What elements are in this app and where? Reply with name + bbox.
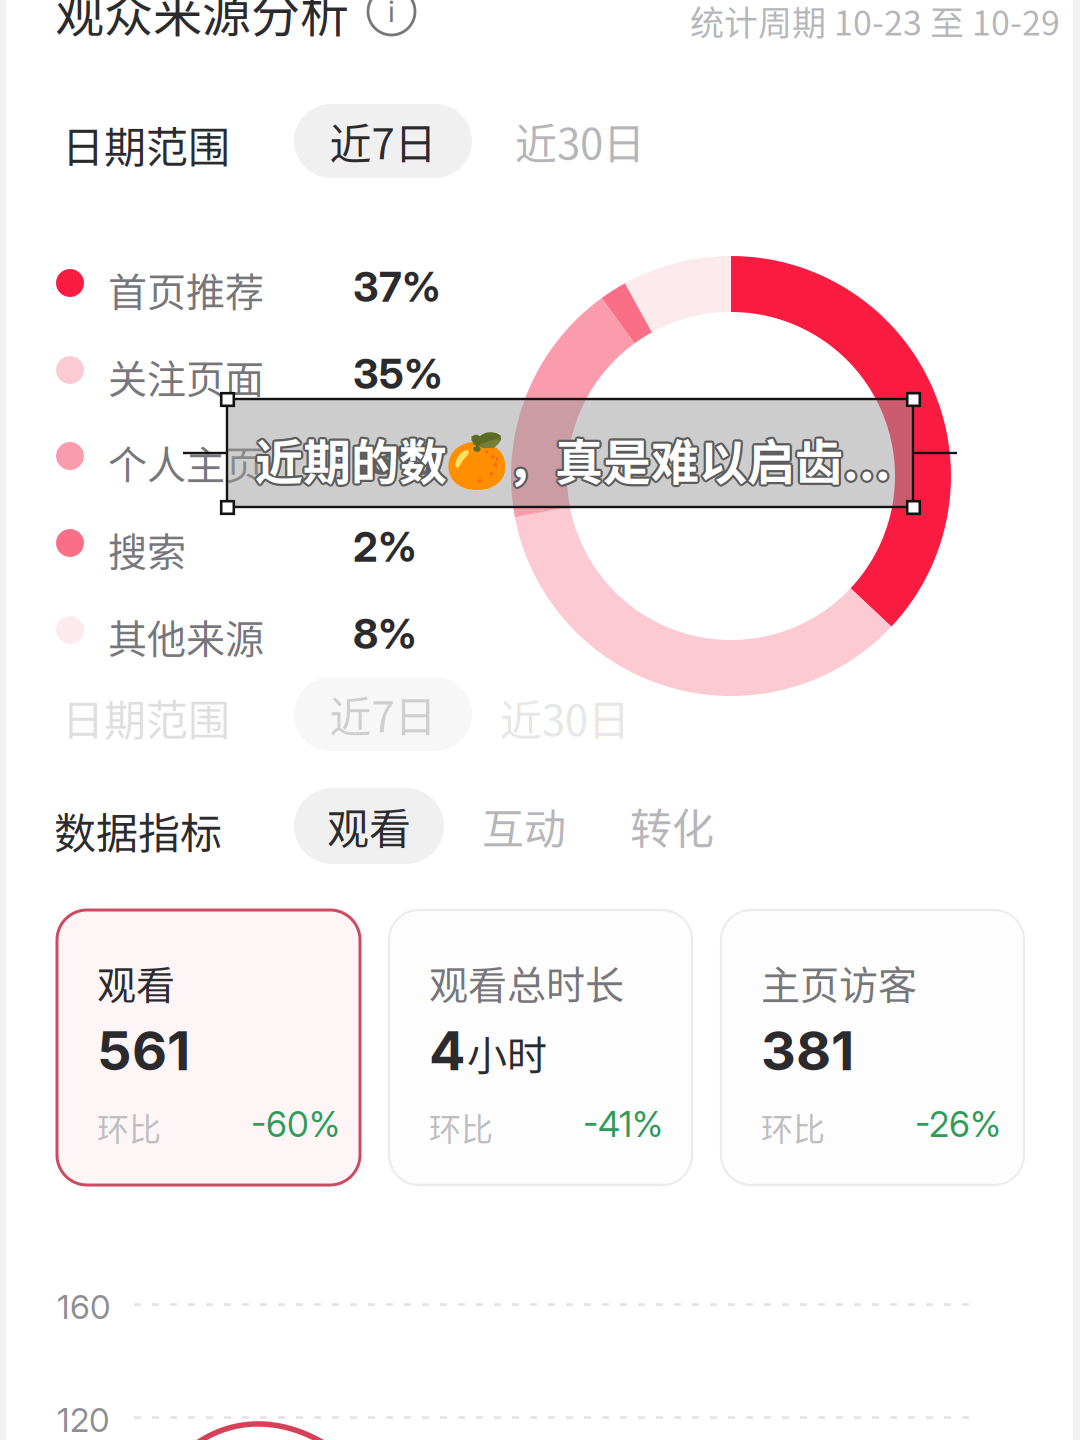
staticText: i	[388, 0, 395, 30]
staticText: 近期的数🍊，真是难以启齿...	[257, 426, 893, 495]
staticText: 近期的数🍊，真是难以启齿...	[255, 426, 891, 496]
staticText: 关注页面	[108, 348, 264, 405]
staticText: 日期范围	[62, 687, 230, 748]
staticText: 观看总时长	[429, 954, 624, 1011]
staticText: 4	[429, 1018, 466, 1083]
staticText: 37%	[353, 262, 441, 312]
staticText: 搜索	[108, 521, 186, 578]
staticText: 近30日	[515, 111, 645, 171]
staticText: -26%	[915, 1103, 1001, 1145]
button[interactable]: 转化	[626, 788, 718, 864]
staticText: 近期的数🍊，真是难以启齿...	[257, 422, 893, 492]
staticText: 近期的数🍊，真是难以启齿...	[257, 424, 893, 493]
staticText: 近期的数🍊，真是难以启齿...	[255, 422, 891, 491]
staticText: 近期的数🍊，真是难以启齿...	[253, 426, 889, 495]
staticText: 小时	[467, 1024, 547, 1082]
staticText: 观众来源分析	[55, 0, 349, 46]
staticText: 近7日	[329, 111, 436, 171]
staticText: 35%	[353, 349, 443, 399]
staticText: 环比	[429, 1104, 493, 1150]
button[interactable]: 关于观众来源分析	[367, 0, 416, 36]
staticText: -60%	[251, 1103, 340, 1145]
staticText: 381	[761, 1018, 854, 1083]
staticText: 160	[57, 1287, 111, 1327]
staticText: 互动	[482, 796, 566, 856]
staticText: -41%	[583, 1103, 663, 1145]
button[interactable]: 近7日	[294, 104, 472, 178]
staticText: 转化	[630, 796, 714, 856]
staticText: 主页访客	[761, 954, 917, 1011]
staticText: 561	[97, 1018, 190, 1083]
button[interactable]: 近30日	[500, 104, 660, 178]
staticText: 近期的数🍊，真是难以启齿...	[255, 424, 891, 493]
button[interactable]: 主页访客	[721, 910, 1024, 1185]
button[interactable]: 观看总时长	[389, 910, 692, 1185]
staticText: 观看	[327, 796, 411, 856]
staticText: 统计周期 10-23 至 10-29	[690, 0, 1060, 45]
staticText: 近7日	[329, 684, 436, 744]
staticText: 日期范围	[62, 114, 230, 175]
staticText: 120	[57, 1400, 110, 1440]
staticText: 8%	[353, 609, 417, 659]
staticText: 环比	[761, 1104, 825, 1150]
button[interactable]: 观看	[294, 788, 444, 864]
staticText: 环比	[97, 1104, 161, 1150]
staticText: 18%	[353, 435, 433, 485]
staticText: 数据指标	[54, 800, 222, 861]
staticText: 首页推荐	[108, 261, 264, 318]
staticText: 个人主页	[108, 434, 264, 491]
staticText: 近30日	[500, 687, 630, 748]
button[interactable]: 观看	[57, 910, 360, 1185]
staticText: 2%	[353, 522, 417, 572]
staticText: 近期的数🍊，真是难以启齿...	[253, 424, 889, 493]
staticText: 其他来源	[108, 608, 264, 665]
staticText: 近期的数🍊，真是难以启齿...	[253, 422, 889, 492]
staticText: 观看	[97, 954, 175, 1011]
button[interactable]: 互动	[478, 788, 570, 864]
